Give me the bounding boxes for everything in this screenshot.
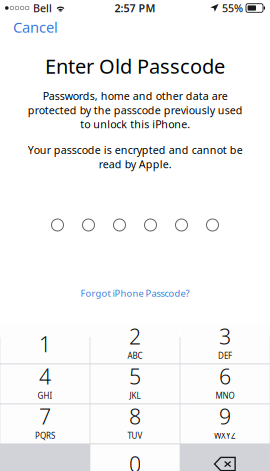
button[interactable]: 6 [180,364,270,404]
staticText: 4 [39,362,51,390]
staticText: 55% [222,1,243,15]
staticText: Cancel [13,17,58,37]
button[interactable]: 4 [0,364,90,404]
staticText: 5 [129,362,141,390]
staticText: 0 [129,450,141,471]
staticText: 8 [129,402,141,430]
staticText: 2:57 PM [114,1,155,15]
staticText: Your passcode is encrypted and cannot be… [27,143,242,171]
button[interactable]: 9 [180,404,270,444]
button[interactable]: 0 [90,444,180,471]
button[interactable]: 2 [90,324,180,364]
button[interactable]: 1 [0,324,90,364]
staticText: Bell [33,1,52,15]
button[interactable]: Delete [180,444,270,471]
button[interactable]: Cancel [0,13,71,41]
staticText: TUV [127,430,142,441]
staticText: 6 [219,362,231,390]
button[interactable]: 8 [90,404,180,444]
staticText: 2 [129,322,141,350]
button[interactable]: 3 [180,324,270,364]
staticText: 1 [39,330,51,358]
staticText: DEF [218,350,232,361]
staticText: 3 [219,322,231,350]
button[interactable]: 7 [0,404,90,444]
staticText: Enter Old Passcode [45,53,225,79]
staticText: Passwords, home and other data are prote… [27,89,242,131]
staticText: GHI [37,390,52,401]
staticText: ABC [127,350,142,361]
staticText: JKL [129,390,140,401]
staticText: 9 [219,402,231,430]
staticText: MNO [215,390,234,401]
staticText: 7 [39,402,51,430]
button[interactable]: Forgot iPhone Passcode? [72,284,197,302]
staticText: WXYZ [214,430,236,441]
button[interactable]: 5 [90,364,180,404]
staticText: PQRS [35,430,55,441]
staticText: Forgot iPhone Passcode? [80,287,189,299]
